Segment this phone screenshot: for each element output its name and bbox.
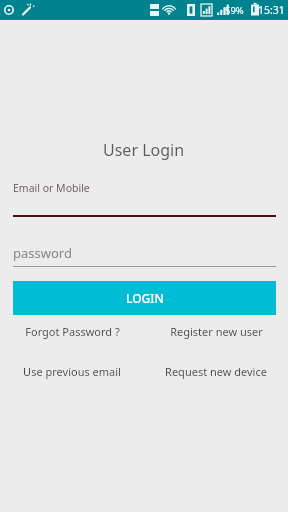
staticText: Email or Mobile [13, 181, 90, 195]
staticText: Use previous email [23, 364, 121, 379]
staticText: password [13, 244, 72, 262]
staticText: User Login [103, 139, 185, 161]
staticText: LOGIN [126, 290, 164, 306]
button[interactable]: Forgot Password ? [0, 318, 144, 345]
staticText: 59% [225, 4, 244, 17]
staticText: Request new device [165, 364, 267, 379]
staticText: Forgot Password ? [25, 324, 120, 339]
button[interactable]: Use previous email [0, 358, 144, 385]
button[interactable]: Request new device [144, 358, 288, 385]
staticText: 15:31 [258, 3, 285, 17]
button[interactable]: password [0, 244, 288, 267]
button[interactable]: Email or Mobile [0, 181, 288, 217]
button[interactable]: LOGIN [13, 281, 276, 315]
button[interactable]: Register new user [144, 318, 288, 345]
staticText: Register new user [170, 324, 263, 339]
